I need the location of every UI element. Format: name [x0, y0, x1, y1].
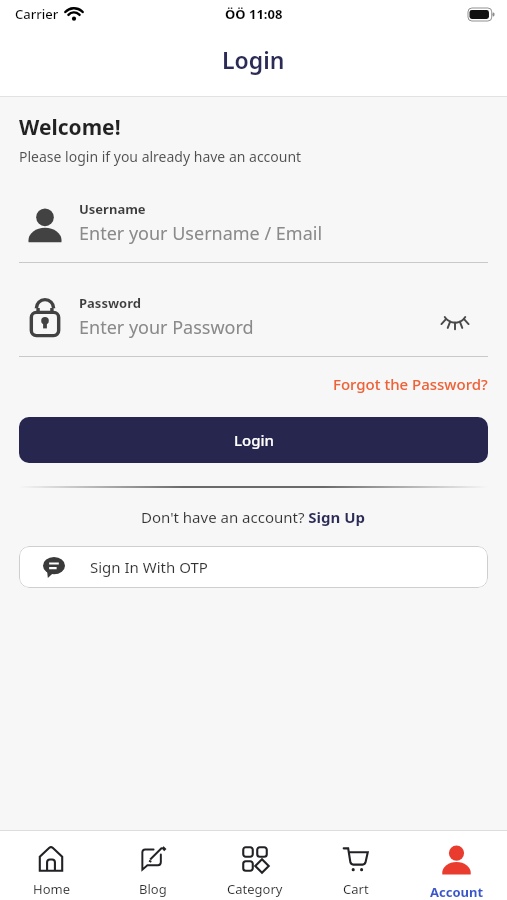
button[interactable]: Category: [204, 831, 305, 900]
staticText: Category: [227, 880, 283, 898]
staticText: Don't have an account? Sign Up: [141, 507, 366, 527]
button[interactable]: Forgot the Password?: [333, 374, 488, 394]
staticText: Login: [222, 44, 285, 75]
staticText: Sign In With OTP: [90, 557, 208, 577]
staticText: Cart: [343, 880, 369, 898]
staticText: Blog: [139, 880, 167, 898]
staticText: Please login if you already have an acco…: [19, 147, 302, 166]
staticText: Carrier: [15, 5, 59, 23]
button[interactable]: Sign In With OTP: [19, 546, 488, 588]
button[interactable]: Cart: [305, 831, 406, 900]
button[interactable]: Login: [19, 417, 488, 463]
staticText: Login: [234, 430, 274, 450]
staticText: Home: [33, 880, 70, 898]
button[interactable]: Account: [406, 831, 507, 900]
staticText: Welcome!: [19, 113, 121, 142]
staticText: Enter your Password: [79, 315, 254, 340]
staticText: Account: [430, 883, 484, 900]
staticText: Enter your Username / Email: [79, 221, 323, 246]
staticText: ÖÖ 11:08: [225, 5, 283, 23]
button[interactable]: Home: [0, 831, 102, 900]
staticText: Password: [79, 294, 141, 312]
button[interactable]: Don't have an account? Sign Up: [141, 507, 366, 527]
staticText: Username: [79, 200, 146, 218]
button[interactable]: Blog: [102, 831, 204, 900]
